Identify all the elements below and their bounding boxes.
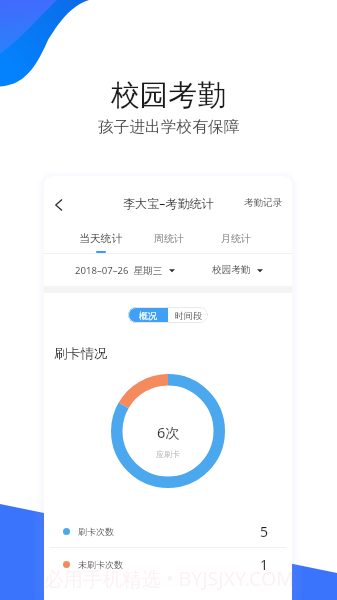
button[interactable]: 未刷卡次数 — [63, 548, 269, 580]
staticText: 孩子进出学校有保障 — [98, 117, 240, 137]
button[interactable]: Back — [44, 190, 73, 220]
button[interactable]: 校园考勤 — [212, 264, 263, 276]
button[interactable]: 时间段 — [168, 307, 208, 323]
staticText: 月统计 — [221, 232, 251, 245]
staticText: 刷卡情况 — [54, 345, 108, 362]
staticText: 概况 — [139, 310, 157, 321]
staticText: 周统计 — [154, 232, 184, 245]
staticText: 刷卡次数 — [78, 526, 114, 537]
staticText: 5 — [260, 522, 269, 541]
staticText: 1 — [260, 555, 269, 574]
staticText: 时间段 — [175, 310, 202, 321]
staticText: 校园考勤 — [212, 264, 251, 276]
staticText: 考勤记录 — [244, 197, 283, 209]
staticText: 2018–07–26 星期三 — [75, 264, 163, 277]
button[interactable]: 刷卡次数 — [63, 515, 269, 547]
button[interactable]: 当天统计 — [67, 228, 135, 253]
button[interactable]: 概况 — [128, 307, 168, 323]
button[interactable]: 考勤记录 — [234, 197, 292, 209]
button[interactable]: 2018–07–26 星期三 — [75, 264, 175, 277]
staticText: 校园考勤 — [111, 77, 227, 113]
staticText: 必用手机精选 • BYJSJXY.COM — [44, 565, 294, 592]
button[interactable]: 周统计 — [135, 228, 202, 253]
staticText: 当天统计 — [79, 232, 123, 246]
staticText: 6次 — [157, 422, 180, 442]
staticText: 李大宝–考勤统计 — [123, 195, 214, 212]
button[interactable]: 月统计 — [202, 228, 269, 253]
staticText: 应刷卡 — [156, 449, 180, 459]
staticText: 未刷卡次数 — [78, 559, 123, 570]
